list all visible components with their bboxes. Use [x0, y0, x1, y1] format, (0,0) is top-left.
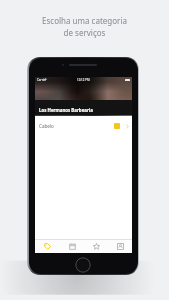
- button[interactable]: Agendamentos: [60, 240, 84, 253]
- staticText: Carrier: [37, 78, 47, 82]
- button[interactable]: Favoritos: [84, 240, 108, 253]
- button[interactable]: Serviços: [35, 240, 60, 253]
- button[interactable]: Cabelo: [35, 116, 132, 136]
- staticText: Escolha uma categoria de serviços: [42, 15, 127, 39]
- staticText: Cabelo: [39, 123, 54, 129]
- button[interactable]: Perfil: [108, 240, 132, 253]
- staticText: 12:12 PM: [77, 78, 90, 82]
- staticText: Los Hermanos Barbearia: [39, 107, 93, 113]
